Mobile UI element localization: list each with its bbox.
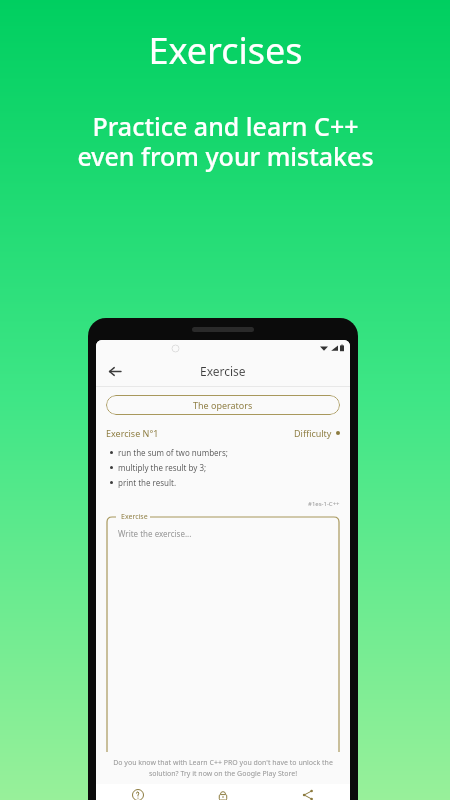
button[interactable]: Help xyxy=(96,789,180,800)
staticText: Exercises xyxy=(148,26,303,75)
staticText: The operators xyxy=(193,399,253,411)
button[interactable]: The operators xyxy=(106,395,340,415)
staticText: Practice and learn C++ even from your mi… xyxy=(77,109,374,173)
staticText: run the sum of two numbers; xyxy=(118,447,228,458)
staticText: Difficulty xyxy=(294,427,332,439)
staticText: #1es-1-C++ xyxy=(308,500,340,508)
staticText: print the result. xyxy=(118,477,177,488)
staticText: Exercise xyxy=(121,512,148,522)
staticText: multiply the result by 3; xyxy=(118,462,207,473)
staticText: Exercise xyxy=(200,363,246,379)
staticText: Write the exercise... xyxy=(118,528,192,539)
button[interactable]: Share xyxy=(265,789,350,800)
staticText: Do you know that with Learn C++ PRO you … xyxy=(106,758,340,778)
button[interactable]: Unlock xyxy=(180,789,265,800)
staticText: Exercise N°1 xyxy=(106,427,159,439)
button[interactable]: Back xyxy=(102,359,126,383)
